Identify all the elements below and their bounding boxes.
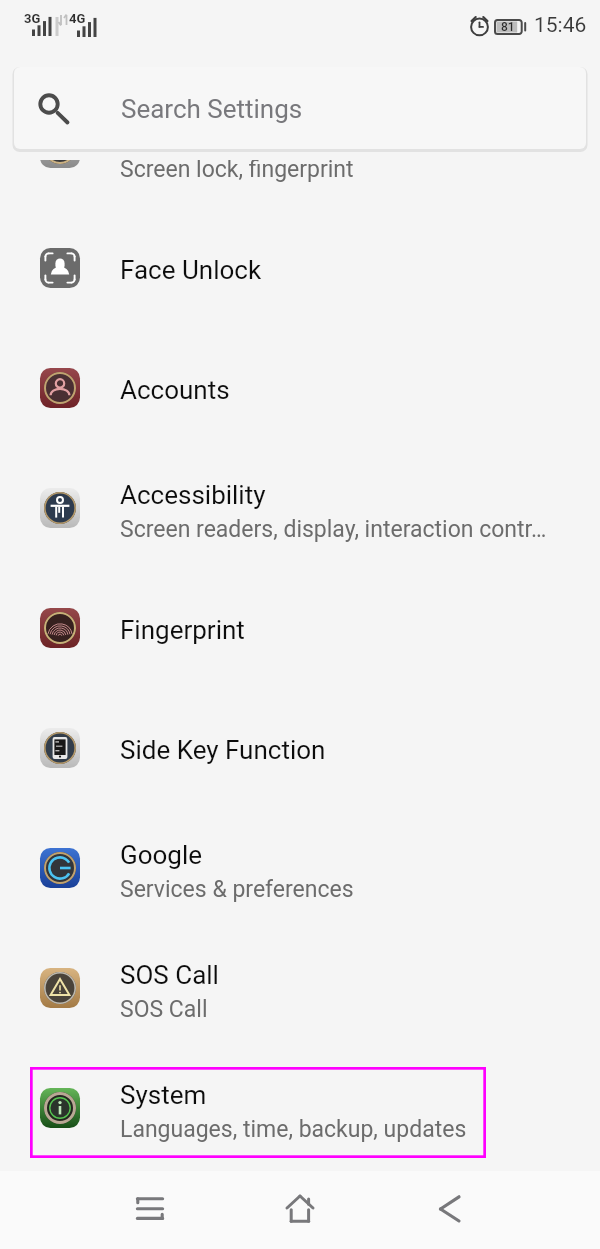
staticText: 81: [501, 20, 515, 34]
staticText: Screen lock, fingerprint: [120, 160, 354, 183]
staticText: Fingerprint: [120, 615, 245, 645]
staticText: Screen readers, display, interaction con…: [120, 516, 547, 543]
button[interactable]: Accessibility: [0, 448, 600, 568]
staticText: Services & preferences: [120, 876, 354, 903]
button[interactable]: Fingerprint: [0, 568, 600, 688]
staticText: Languages, time, backup, updates: [120, 1116, 467, 1143]
staticText: Face Unlock: [120, 255, 262, 285]
staticText: Side Key Function: [120, 735, 326, 765]
staticText: SOS Call: [120, 960, 219, 990]
staticText: Google: [120, 840, 203, 870]
staticText: 15:46: [534, 13, 587, 38]
staticText: SOS Call: [120, 996, 208, 1023]
button[interactable]: Search Settings: [14, 67, 586, 149]
button[interactable]: Back: [406, 1171, 494, 1249]
button[interactable]: Accounts: [0, 328, 600, 448]
button[interactable]: Google: [0, 808, 600, 928]
button[interactable]: Side Key Function: [0, 688, 600, 808]
button[interactable]: Security: [0, 160, 600, 208]
button[interactable]: System: [0, 1048, 600, 1168]
staticText: 4G: [69, 11, 86, 26]
staticText: Search Settings: [121, 94, 303, 124]
staticText: Accessibility: [120, 480, 266, 510]
button[interactable]: Recents: [106, 1171, 194, 1249]
staticText: System: [120, 1080, 207, 1110]
staticText: 3G: [24, 11, 41, 26]
button[interactable]: Face Unlock: [0, 208, 600, 328]
button[interactable]: SOS Call: [0, 928, 600, 1048]
staticText: Accounts: [120, 375, 230, 405]
button[interactable]: Home: [256, 1171, 344, 1249]
